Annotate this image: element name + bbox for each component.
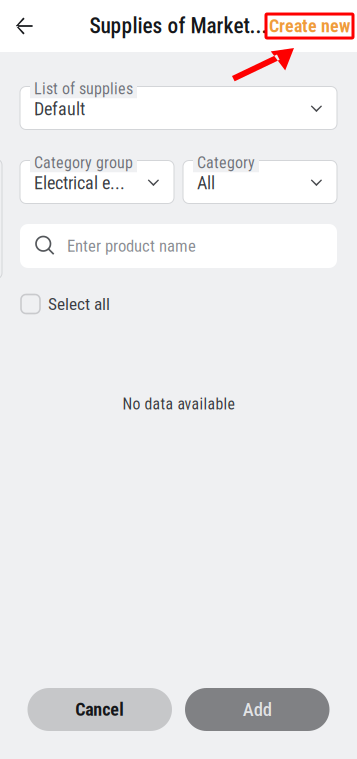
staticText: Default [34, 98, 85, 120]
staticText: Supplies of Market... [89, 13, 267, 38]
staticText: Category [197, 153, 255, 172]
staticText: All [197, 172, 215, 194]
staticText: Create new [269, 15, 350, 37]
staticText: Select all [48, 294, 110, 314]
staticText: Electrical e... [34, 172, 125, 194]
staticText: No data available [122, 395, 234, 413]
staticText: Enter product name [67, 236, 196, 256]
staticText: List of supplies [34, 79, 133, 98]
staticText: Category group [34, 153, 133, 172]
button[interactable]: Select all [20, 288, 337, 320]
button[interactable]: Cancel [27, 688, 172, 731]
button[interactable]: Back [0, 0, 48, 52]
button[interactable]: Add [185, 688, 329, 731]
staticText: Cancel [75, 699, 124, 720]
staticText: Add [243, 699, 272, 720]
button[interactable]: Create new [266, 14, 353, 38]
